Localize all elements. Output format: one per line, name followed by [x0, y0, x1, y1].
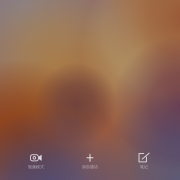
- button[interactable]: Notes: [117, 150, 171, 172]
- staticText: 笔记: [140, 164, 148, 169]
- button[interactable]: Add call: [63, 150, 117, 172]
- button[interactable]: Video mode: [9, 150, 63, 172]
- staticText: 视频模式: [28, 164, 44, 169]
- staticText: 添加通话: [82, 164, 98, 169]
